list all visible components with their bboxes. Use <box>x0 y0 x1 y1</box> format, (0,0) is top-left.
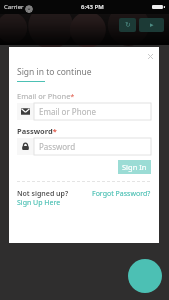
staticText: Not signed up?Sign Up Here <box>17 189 77 207</box>
staticText: Forgot Password? <box>92 189 151 199</box>
staticText: ↻ <box>125 21 131 29</box>
button[interactable]: Forgot Password? <box>92 189 151 199</box>
button[interactable]: Close <box>144 50 156 62</box>
staticText: Email or Phone* <box>17 91 75 101</box>
staticText: ▸ <box>150 21 154 29</box>
staticText: Sign In <box>122 162 147 172</box>
button[interactable]: Add <box>128 259 162 293</box>
staticText: 6:43 PM <box>81 3 104 11</box>
staticText: Sign in to continue <box>17 66 92 78</box>
button[interactable]: Password <box>17 138 151 155</box>
button[interactable]: Refresh <box>119 18 136 32</box>
staticText: Email or Phone <box>39 106 96 117</box>
button[interactable]: Next <box>139 18 164 32</box>
staticText: Password* <box>17 126 57 136</box>
button[interactable]: Not signed up?Sign Up Here <box>17 189 77 207</box>
button[interactable]: Email or Phone <box>17 103 151 120</box>
staticText: Password <box>39 141 76 152</box>
staticText: Carrier <box>4 3 24 11</box>
button[interactable]: Sign In <box>118 160 151 174</box>
